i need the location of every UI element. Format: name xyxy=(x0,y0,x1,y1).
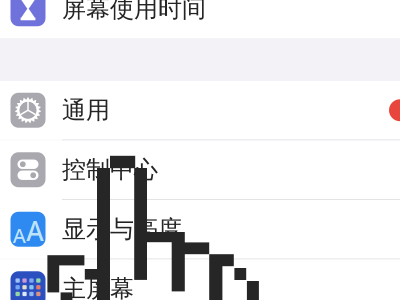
staticText: A xyxy=(26,213,43,248)
button[interactable]: 控制中心 xyxy=(0,140,400,199)
staticText: 通用 xyxy=(62,95,110,125)
button[interactable]: 主屏幕 xyxy=(0,259,400,300)
staticText: 主屏幕 xyxy=(62,274,134,300)
staticText: 屏幕使用时间 xyxy=(62,0,206,23)
staticText: A xyxy=(13,222,26,248)
staticText: 控制中心 xyxy=(62,155,158,184)
button[interactable]: 屏幕使用时间 xyxy=(0,0,400,38)
button[interactable]: A xyxy=(0,200,400,258)
staticText: 显示与亮度 xyxy=(62,214,182,244)
button[interactable]: 通用 xyxy=(0,81,400,139)
